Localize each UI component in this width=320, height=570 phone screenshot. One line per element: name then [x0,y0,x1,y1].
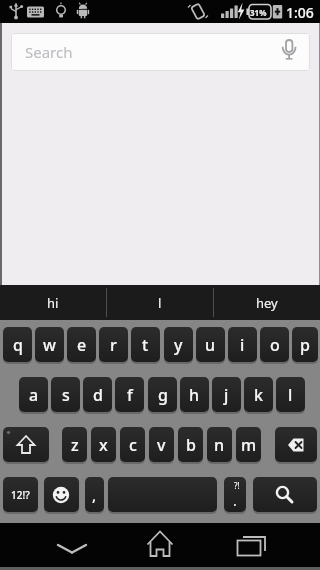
staticText: t [142,334,149,356]
staticText: a [29,384,39,406]
button[interactable]: y [164,327,193,362]
button[interactable]: 12!? [3,477,38,512]
button[interactable]: t [131,327,160,362]
staticText: q [13,334,23,356]
staticText: k [254,384,263,406]
staticText: i [240,334,245,356]
button[interactable]: s [51,377,80,412]
staticText: Search [25,42,73,62]
staticText: 1:06 [286,3,314,22]
button[interactable]: h [180,377,209,412]
staticText: n [214,434,225,456]
button[interactable]: k [244,377,273,412]
button[interactable]: r [99,327,128,362]
button[interactable]: b [178,427,203,462]
button[interactable]: m [236,427,261,462]
staticText: hi [47,294,59,312]
button[interactable]: l [276,377,305,412]
button[interactable]: u [196,327,225,362]
button[interactable]: z [62,427,87,462]
button[interactable]: o [260,327,289,362]
staticText: c [129,434,137,456]
staticText: f [127,384,133,406]
button[interactable] [108,477,217,512]
button[interactable]: x [91,427,116,462]
button[interactable] [275,427,317,462]
staticText: l [288,384,293,406]
staticText: d [93,384,103,406]
button[interactable] [253,477,317,512]
button[interactable] [217,524,281,568]
button[interactable]: f [115,377,144,412]
staticText: , [92,485,97,505]
button[interactable]: w [35,327,64,362]
staticText: e [77,334,87,356]
staticText: . [233,491,237,510]
button[interactable]: hi [0,285,106,320]
button[interactable]: v [149,427,174,462]
button[interactable]: d [83,377,112,412]
staticText: o [270,334,280,356]
staticText: g [158,384,168,406]
button[interactable]: a [19,377,48,412]
button[interactable]: c [120,427,145,462]
staticText: u [205,334,216,356]
button[interactable]: ?! [224,477,246,512]
staticText: h [189,384,200,406]
staticText: m [241,434,257,456]
staticText: z [71,434,79,456]
button[interactable]: hey [214,285,320,320]
staticText: j [224,384,229,406]
staticText: y [174,334,183,356]
button[interactable]: q [3,327,32,362]
staticText: s [62,384,70,406]
staticText: 31% [250,7,267,18]
staticText: hey [256,294,278,312]
button[interactable]: l [107,285,213,320]
button[interactable]: j [212,377,241,412]
button[interactable] [40,524,104,568]
button[interactable]: g [148,377,177,412]
button[interactable]: Search [11,33,310,71]
button[interactable] [44,477,79,512]
button[interactable]: , [85,477,104,512]
staticText: v [157,434,166,456]
button[interactable]: e [67,327,96,362]
staticText: w [43,334,56,356]
staticText: x [99,434,108,456]
button[interactable]: n [207,427,232,462]
button[interactable] [128,524,192,568]
button[interactable]: p [292,327,318,362]
staticText: r [110,334,117,356]
staticText: 12!? [11,488,30,502]
staticText: l [158,294,162,312]
staticText: b [186,434,196,456]
staticText: ?! [234,480,240,491]
button[interactable]: i [228,327,257,362]
staticText: p [300,334,310,356]
button[interactable] [3,427,49,462]
